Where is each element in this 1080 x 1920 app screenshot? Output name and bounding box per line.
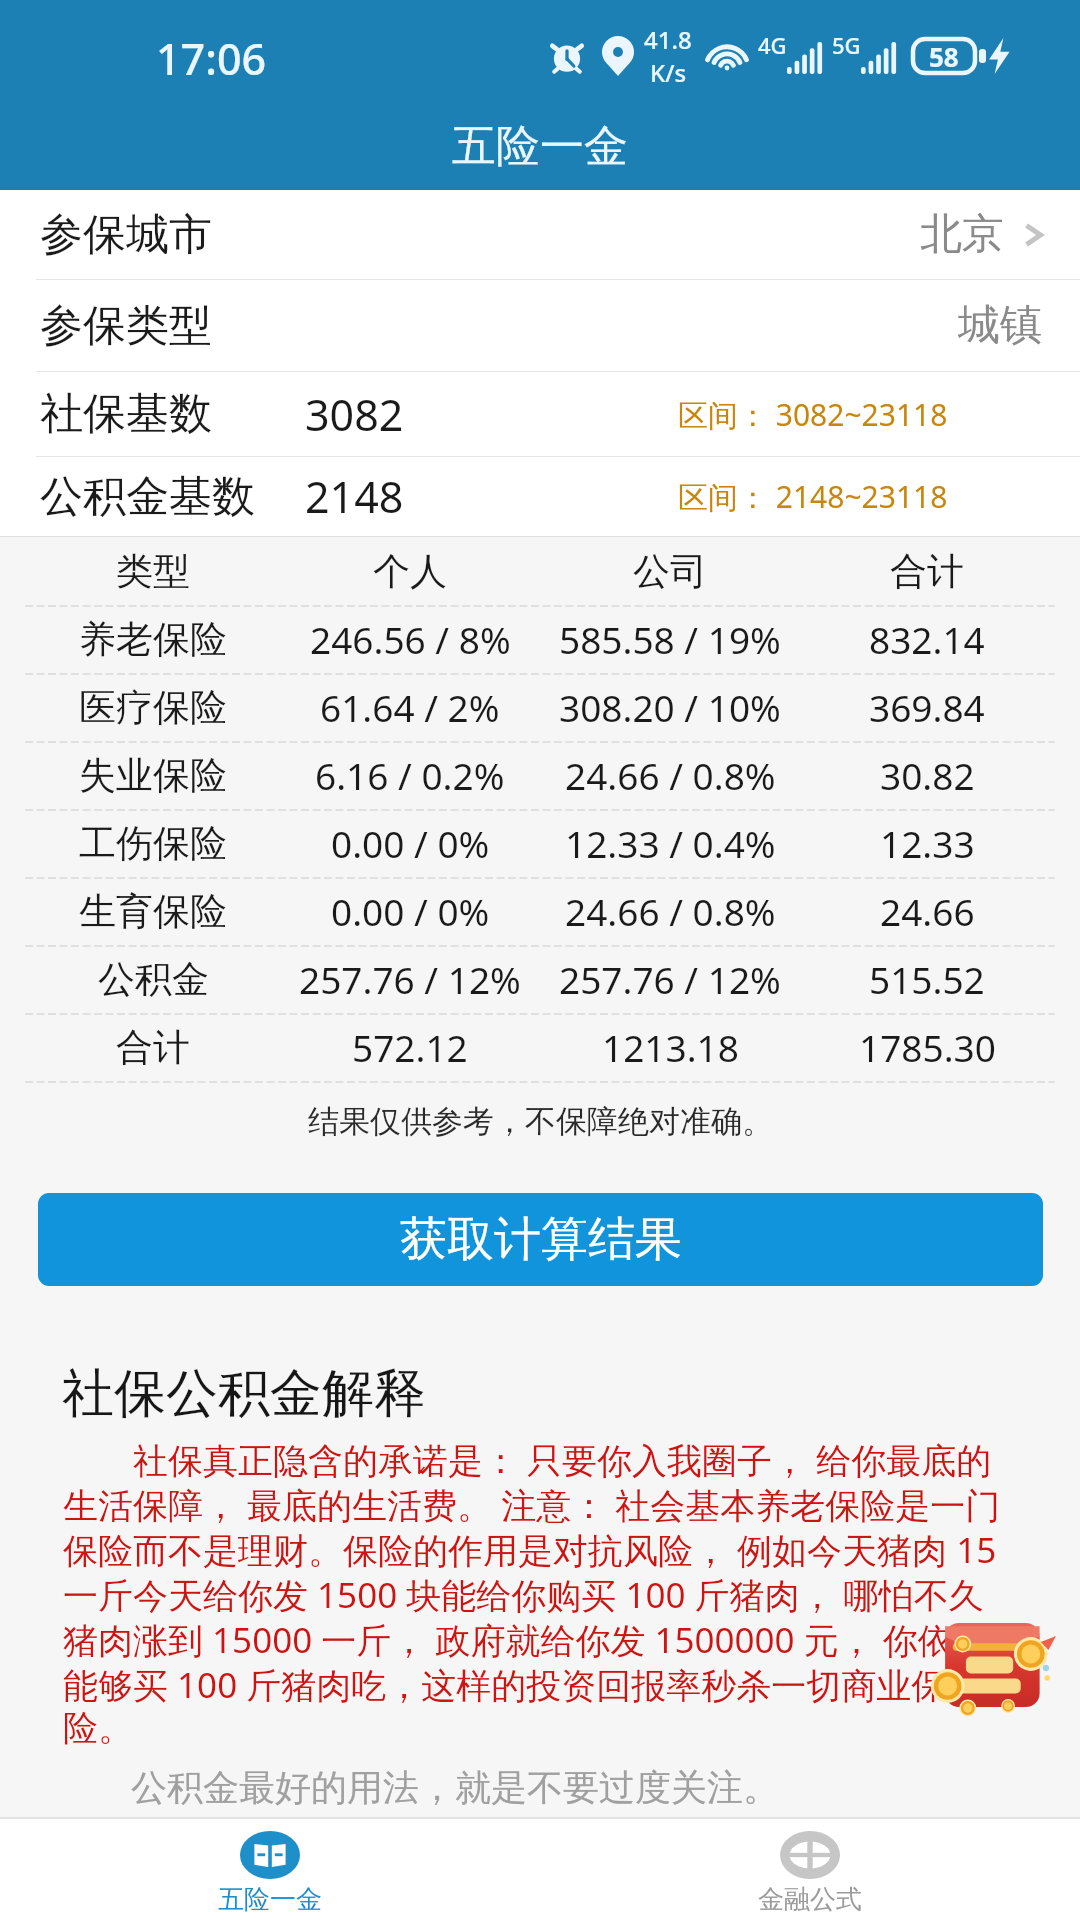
staticText: 类型 [116,548,190,595]
staticText: 合计 [890,548,964,595]
staticText: 养老保险 [79,616,227,663]
staticText: 五险一金 [218,1883,322,1916]
staticText: 社保基数 [40,387,212,441]
staticText: 572.12 [352,1022,468,1072]
staticText: 失业保险 [79,752,227,799]
staticText: 41.8 [644,23,692,56]
staticText: 3082 [305,385,404,444]
button[interactable]: 五险一金 [0,1819,540,1920]
button[interactable]: 获取计算结果 [38,1193,1043,1286]
staticText: 结果仅供参考，不保障绝对准确。 [308,1102,773,1141]
staticText: 1785.30 [859,1022,996,1072]
staticText: 257.76 / 12% [559,954,781,1004]
button[interactable]: 社保基数 [0,372,1080,456]
staticText: 308.20 / 10% [559,682,781,732]
button[interactable]: 红包大派送 [930,1616,1056,1716]
staticText: 获取计算结果 [400,1210,682,1269]
staticText: 24.66 [880,886,975,936]
button[interactable]: 参保类型 [0,280,1080,371]
staticText: 生活保障， 最底的生活费。 注意： 社会基本养老保险是一门 [63,1481,1001,1525]
staticText: 参保类型 [40,299,212,353]
staticText: K/s [650,56,687,89]
staticText: 5G [832,30,861,60]
button[interactable]: 金融公式 [540,1819,1080,1920]
staticText: 公积金基数 [40,470,255,524]
staticText: 社保真正隐含的承诺是： 只要你入我圈子， 给你最底的 [133,1436,992,1480]
staticText: 6.16 / 0.2% [315,750,505,800]
staticText: 保险而不是理财。保险的作用是对抗风险， 例如今天猪肉 15 [63,1526,997,1570]
staticText: 五险一金 [452,119,628,174]
staticText: 58 [929,39,959,74]
staticText: 17:06 [156,29,267,88]
staticText: 区间： 2148~23118 [678,476,948,517]
staticText: 公积金最好的用法，就是不要过度关注。 [131,1765,779,1810]
staticText: 12.33 / 0.4% [565,818,776,868]
staticText: 4G [758,30,787,60]
staticText: 社保公积金解释 [62,1361,426,1427]
staticText: 猪肉涨到 15000 一斤， 政府就给你发 1500000 元， 你依然 [63,1616,988,1660]
staticText: 险。 [63,1706,133,1750]
staticText: 24.66 / 0.8% [565,750,776,800]
staticText: 0.00 / 0% [331,818,490,868]
staticText: 能够买 100 斤猪肉吃，这样的投资回报率秒杀一切商业保 [63,1661,947,1705]
staticText: 区间： 3082~23118 [678,394,948,435]
staticText: 246.56 / 8% [310,614,511,664]
staticText: 生育保险 [79,888,227,935]
staticText: 合计 [116,1024,190,1071]
staticText: 金融公式 [758,1883,862,1916]
staticText: 832.14 [869,614,985,664]
staticText: 城镇 [958,299,1042,352]
staticText: 一斤今天给你发 1500 块能给你购买 100 斤猪肉， 哪怕不久 [63,1571,984,1615]
staticText: 2148 [305,467,404,526]
staticText: 工伤保险 [79,820,227,867]
staticText: 12.33 [880,818,975,868]
staticText: 30.82 [880,750,975,800]
staticText: 1213.18 [602,1022,739,1072]
staticText: 医疗保险 [79,684,227,731]
staticText: 公积金 [98,956,209,1003]
staticText: 257.76 / 12% [299,954,521,1004]
button[interactable]: 公积金基数 [0,457,1080,536]
staticText: 369.84 [869,682,985,732]
staticText: 公司 [633,548,707,595]
staticText: 585.58 / 19% [559,614,781,664]
button[interactable]: 参保城市 [0,190,1080,279]
staticText: 北京 [920,208,1004,261]
staticText: 24.66 / 0.8% [565,886,776,936]
staticText: 0.00 / 0% [331,886,490,936]
staticText: 参保城市 [40,208,212,262]
staticText: 个人 [373,548,447,595]
staticText: 515.52 [869,954,985,1004]
staticText: 61.64 / 2% [320,682,500,732]
